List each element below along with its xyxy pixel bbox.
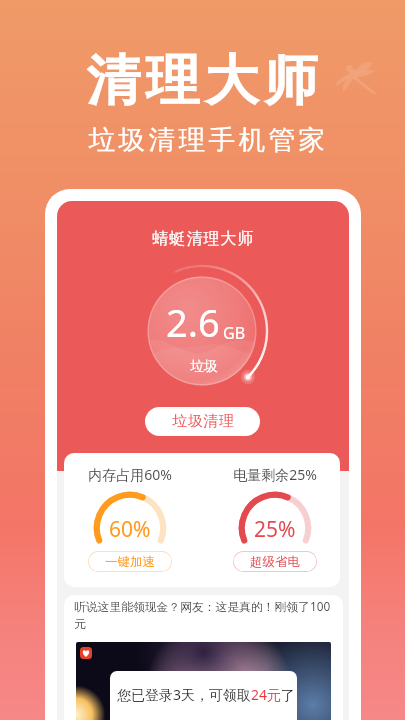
staticText: 蜻蜓清理大师 [152,229,254,249]
button[interactable]: 超级省电 [233,551,317,572]
staticText: 2.6 [166,296,220,348]
staticText: GB [223,322,246,344]
button[interactable]: 垃圾清理 [145,407,260,436]
staticText: 一键加速 [105,554,155,570]
staticText: 垃圾清理 [172,412,234,431]
staticText: 您已登录3天，可领取24元了 [117,685,296,704]
staticText: 垃圾清理手机管家 [6,123,405,157]
staticText: 垃圾 [132,358,276,376]
button[interactable]: 听说这里能领现金？网友：这是真的！刚领了100元 [64,595,343,720]
staticText: 60% [109,515,151,544]
button[interactable]: 一键加速 [88,551,172,572]
staticText: 25% [254,515,296,544]
staticText: 超级省电 [250,554,300,570]
staticText: 清理大师 [2,47,405,115]
staticText: 内存占用60% [88,465,172,484]
staticText: 电量剩余25% [233,465,317,484]
staticText: 听说这里能领现金？网友：这是真的！刚领了100元 [74,598,336,632]
